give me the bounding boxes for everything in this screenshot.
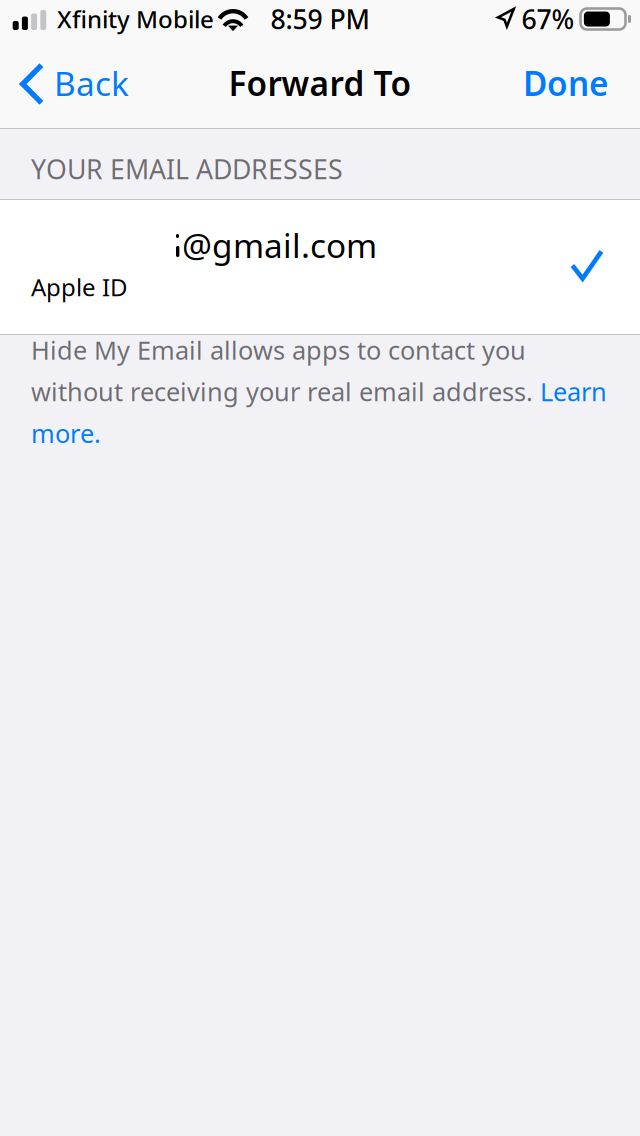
- staticText: Xfinity Mobile: [57, 3, 214, 35]
- staticText: 8:59 PM: [270, 1, 369, 37]
- staticText: @gmail.com: [182, 223, 377, 267]
- button[interactable]: Back: [0, 50, 143, 128]
- button[interactable]: Learn: [540, 375, 607, 408]
- staticText: without receiving your real email addres…: [31, 375, 540, 408]
- staticText: Forward To: [228, 61, 411, 105]
- button[interactable]: @gmail.com: [0, 200, 640, 334]
- staticText: YOUR EMAIL ADDRESSES: [31, 151, 343, 187]
- button[interactable]: more.: [31, 416, 101, 450]
- staticText: Hide My Email allows apps to contact you: [31, 333, 526, 367]
- staticText: Back: [54, 61, 129, 105]
- staticText: Done: [523, 61, 609, 105]
- staticText: more.: [31, 416, 101, 450]
- staticText: Learn: [540, 375, 607, 408]
- staticText: 67%: [521, 1, 574, 37]
- button[interactable]: Done: [507, 50, 640, 128]
- staticText: Apple ID: [31, 271, 128, 303]
